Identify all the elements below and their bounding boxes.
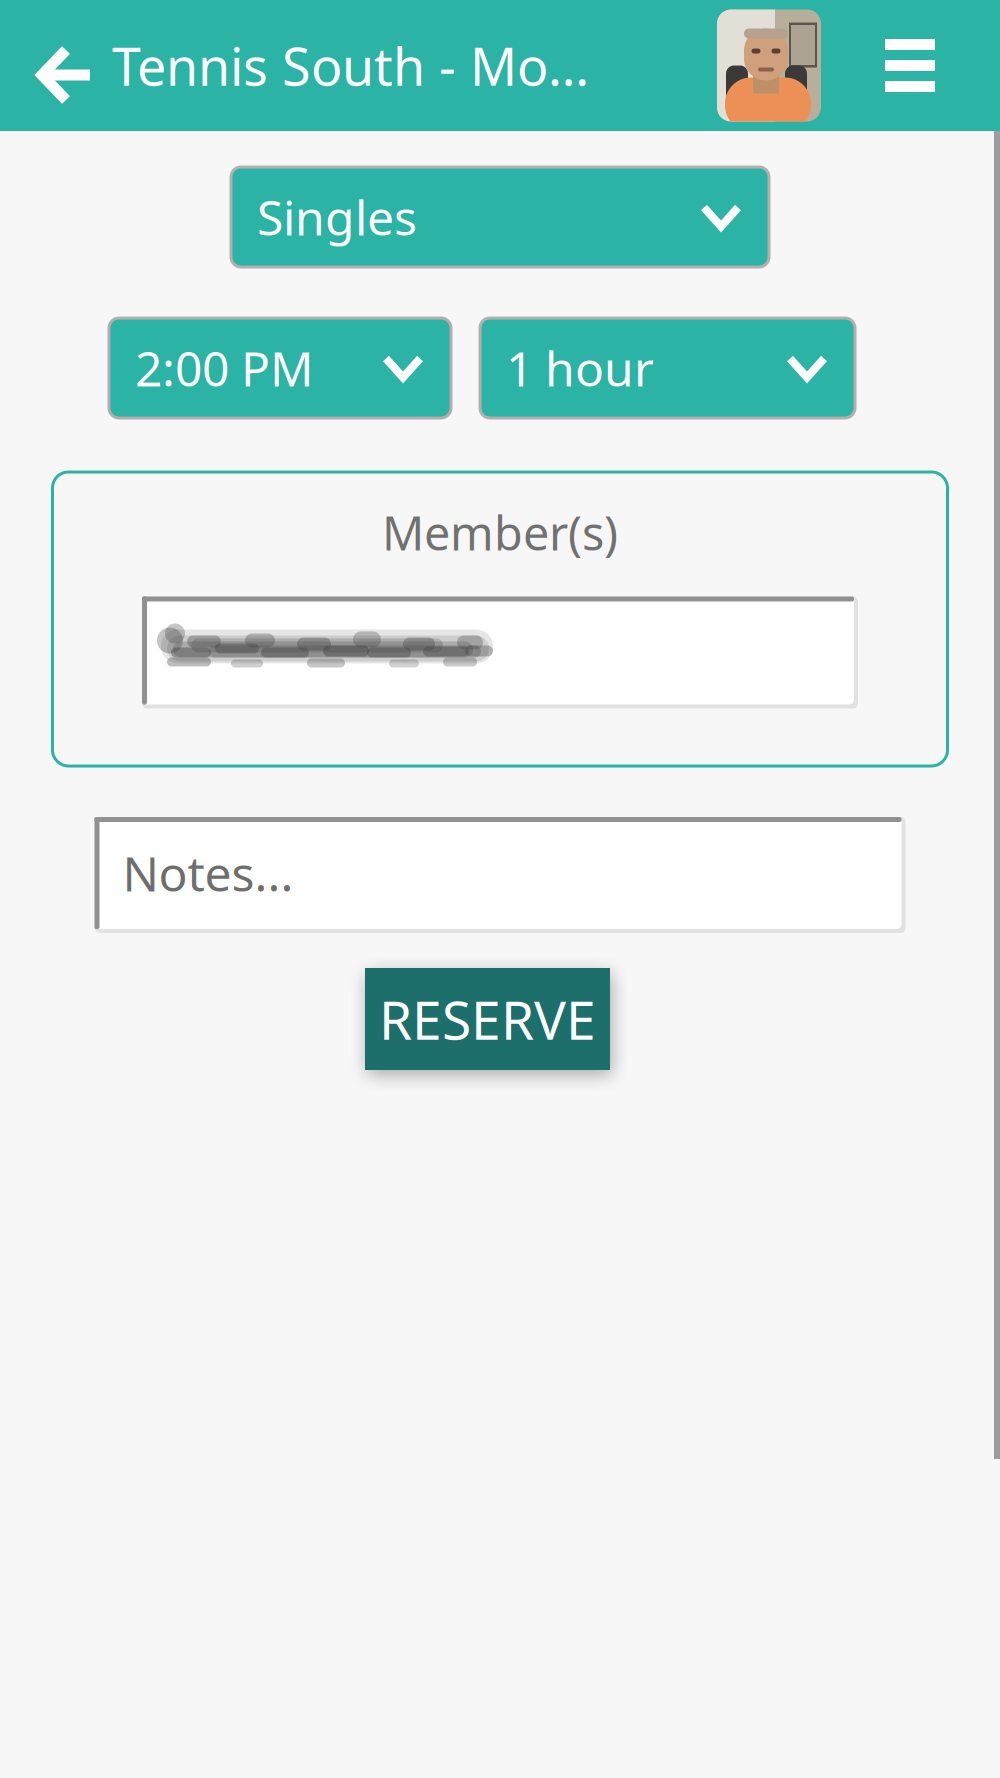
staticText: Singles xyxy=(257,185,417,249)
button[interactable]: RESERVE xyxy=(365,968,610,1070)
button[interactable]: Profile photo xyxy=(717,0,821,131)
button[interactable]: Menu xyxy=(821,0,1000,131)
staticText: 2:00 PM xyxy=(135,336,314,400)
staticText: Notes... xyxy=(122,841,293,905)
button[interactable]: Singles xyxy=(231,167,769,267)
button[interactable]: Back xyxy=(0,0,112,131)
button[interactable]: 2:00 PM xyxy=(109,318,451,418)
staticText: Tennis South - Mo… xyxy=(112,31,589,100)
staticText: Member(s) xyxy=(382,501,618,563)
staticText: 1 hour xyxy=(506,336,654,400)
staticText: RESERVE xyxy=(379,984,596,1054)
button[interactable]: 1 hour xyxy=(480,318,855,418)
